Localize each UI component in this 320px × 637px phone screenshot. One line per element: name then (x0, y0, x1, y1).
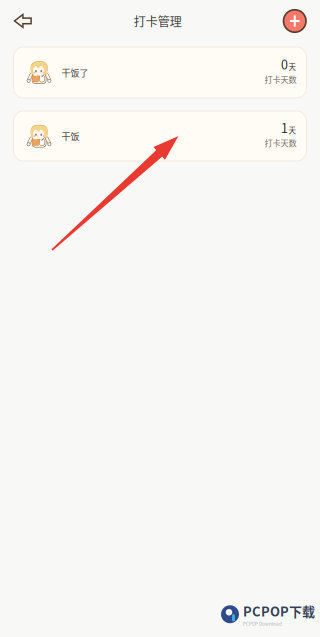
staticText: 天 (288, 61, 296, 72)
staticText: 0 (281, 55, 288, 73)
staticText: 打卡天数 (264, 137, 296, 148)
staticText: 1 (281, 118, 288, 137)
staticText: 打卡天数 (264, 73, 296, 85)
staticText: 干饭 (61, 129, 79, 142)
button[interactable]: 干饭 (13, 111, 306, 161)
staticText: 打卡管理 (134, 12, 182, 30)
staticText: PCPOP Download (243, 620, 282, 627)
button[interactable]: 干饭了 (13, 47, 306, 98)
staticText: PCPOP下载 (243, 601, 315, 620)
button[interactable]: Back (0, 14, 32, 27)
button[interactable]: Add (283, 10, 320, 32)
staticText: 干饭了 (61, 66, 88, 79)
staticText: 天 (288, 125, 296, 135)
